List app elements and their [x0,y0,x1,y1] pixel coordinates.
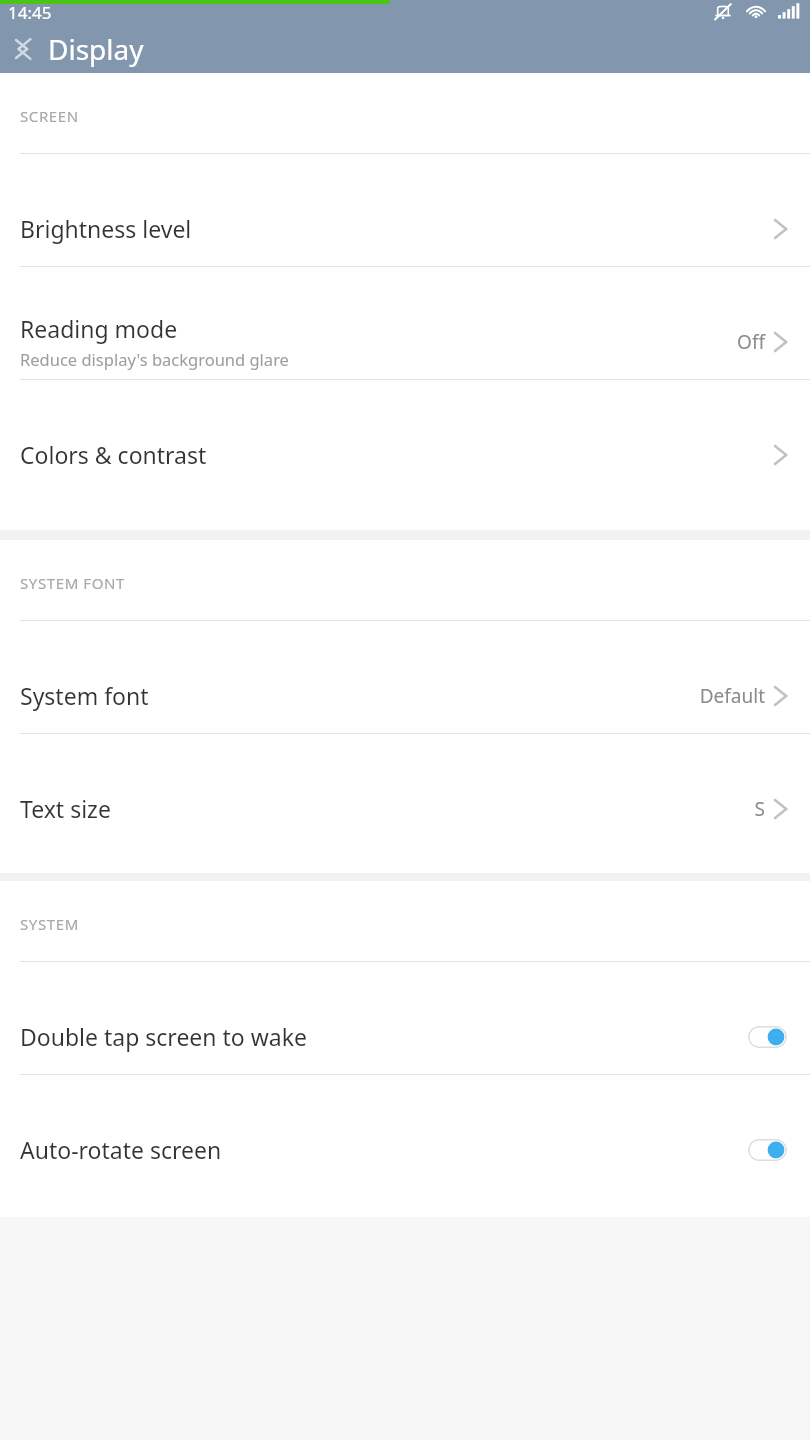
other: Signal strength [778,1,801,23]
staticText: S [754,796,765,822]
staticText: Reduce display's background glare [20,348,289,370]
button[interactable]: Auto-rotate screen [748,1139,787,1161]
button[interactable]: Reading mode [0,304,810,379]
staticText: System font [20,680,149,711]
staticText: Auto-rotate screen [20,1134,222,1165]
staticText: SCREEN [20,106,79,126]
staticText: SYSTEM [20,914,79,934]
staticText: Default [699,683,765,709]
staticText: Reading mode [20,313,178,344]
button[interactable]: Colors & contrast [0,417,810,492]
staticText: 14:45 [8,1,52,24]
button[interactable]: Brightness level [0,191,810,266]
button[interactable]: Text size [0,771,810,846]
staticText: Brightness level [20,213,192,244]
button[interactable]: Double tap screen to wake [0,999,810,1074]
staticText: Double tap screen to wake [20,1021,307,1052]
staticText: Colors & contrast [20,439,207,470]
staticText: Off [737,329,765,355]
button[interactable]: Auto-rotate screen [0,1112,810,1187]
other: Silent mode [712,1,734,23]
button[interactable]: Back [0,25,48,73]
staticText: Display [48,30,144,68]
staticText: SYSTEM FONT [20,573,125,593]
staticText: Text size [20,793,111,824]
other: Wi-Fi [745,1,767,23]
button[interactable]: Double tap screen to wake [748,1026,787,1048]
button[interactable]: System font [0,658,810,733]
